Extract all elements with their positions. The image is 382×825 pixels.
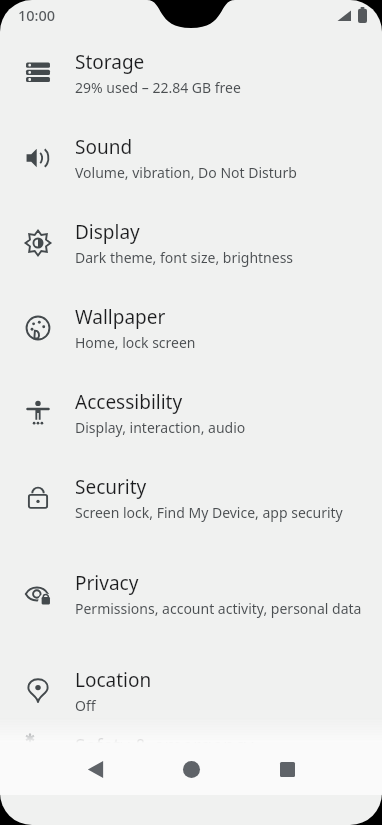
staticText: Home, lock screen [75, 333, 196, 352]
button[interactable]: Wallpaper [0, 285, 382, 370]
button[interactable]: Sound [0, 115, 382, 200]
button[interactable]: Safety & emergency [0, 733, 382, 743]
button[interactable]: Privacy [0, 540, 382, 648]
staticText: Storage [75, 49, 145, 75]
staticText: Display [75, 219, 140, 245]
button[interactable]: Location [0, 648, 382, 733]
staticText: Permissions, account activity, personal … [75, 599, 362, 618]
staticText: Sound [75, 134, 133, 160]
staticText: 29% used – 22.84 GB free [75, 78, 241, 97]
button[interactable]: Recents [264, 746, 310, 792]
staticText: Off [75, 696, 96, 715]
staticText: Display, interaction, audio [75, 418, 246, 437]
staticText: Wallpaper [75, 304, 166, 330]
staticText: Accessibility [75, 389, 183, 415]
staticText: Screen lock, Find My Device, app securit… [75, 503, 343, 522]
staticText: Privacy [75, 570, 139, 596]
button[interactable]: Display [0, 200, 382, 285]
button[interactable]: Accessibility [0, 370, 382, 455]
staticText: Location [75, 667, 152, 693]
button[interactable]: Security [0, 455, 382, 540]
staticText: 10:00 [18, 5, 56, 25]
staticText: Volume, vibration, Do Not Disturb [75, 163, 297, 182]
button[interactable]: Back [72, 746, 118, 792]
staticText: Security [75, 474, 147, 500]
button[interactable]: Home [168, 746, 214, 792]
staticText: Dark theme, font size, brightness [75, 248, 294, 267]
button[interactable]: Storage [0, 30, 382, 115]
